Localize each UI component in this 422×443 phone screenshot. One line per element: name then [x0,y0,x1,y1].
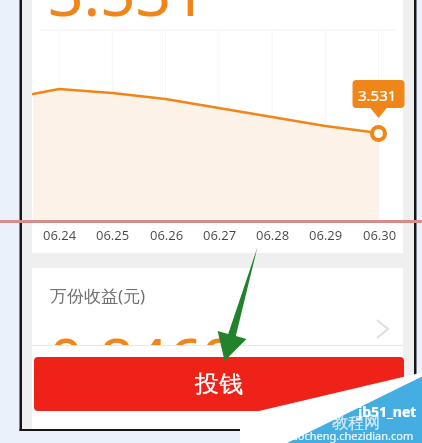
staticText: 06.24 [43,226,77,244]
button[interactable]: 投钱 [34,357,404,411]
button[interactable]: 万份收益(元) [32,268,403,345]
staticText: 06.27 [203,226,237,244]
staticText: jb51_net [358,402,417,421]
staticText: 万份收益(元) [50,284,146,307]
staticText: 3.531 [48,0,207,34]
staticText: 06.30 [363,226,397,244]
staticText: 投钱 [195,369,243,399]
staticText: 0.8468 [49,318,237,395]
staticText: jiaocheng.chezidian.com [286,428,414,443]
staticText: 3.531 [358,85,397,105]
staticText: 06.29 [309,226,343,244]
staticText: 教程网 [332,413,380,433]
staticText: 06.25 [96,226,130,244]
staticText: 06.26 [150,226,184,244]
staticText: 06.28 [256,226,290,244]
